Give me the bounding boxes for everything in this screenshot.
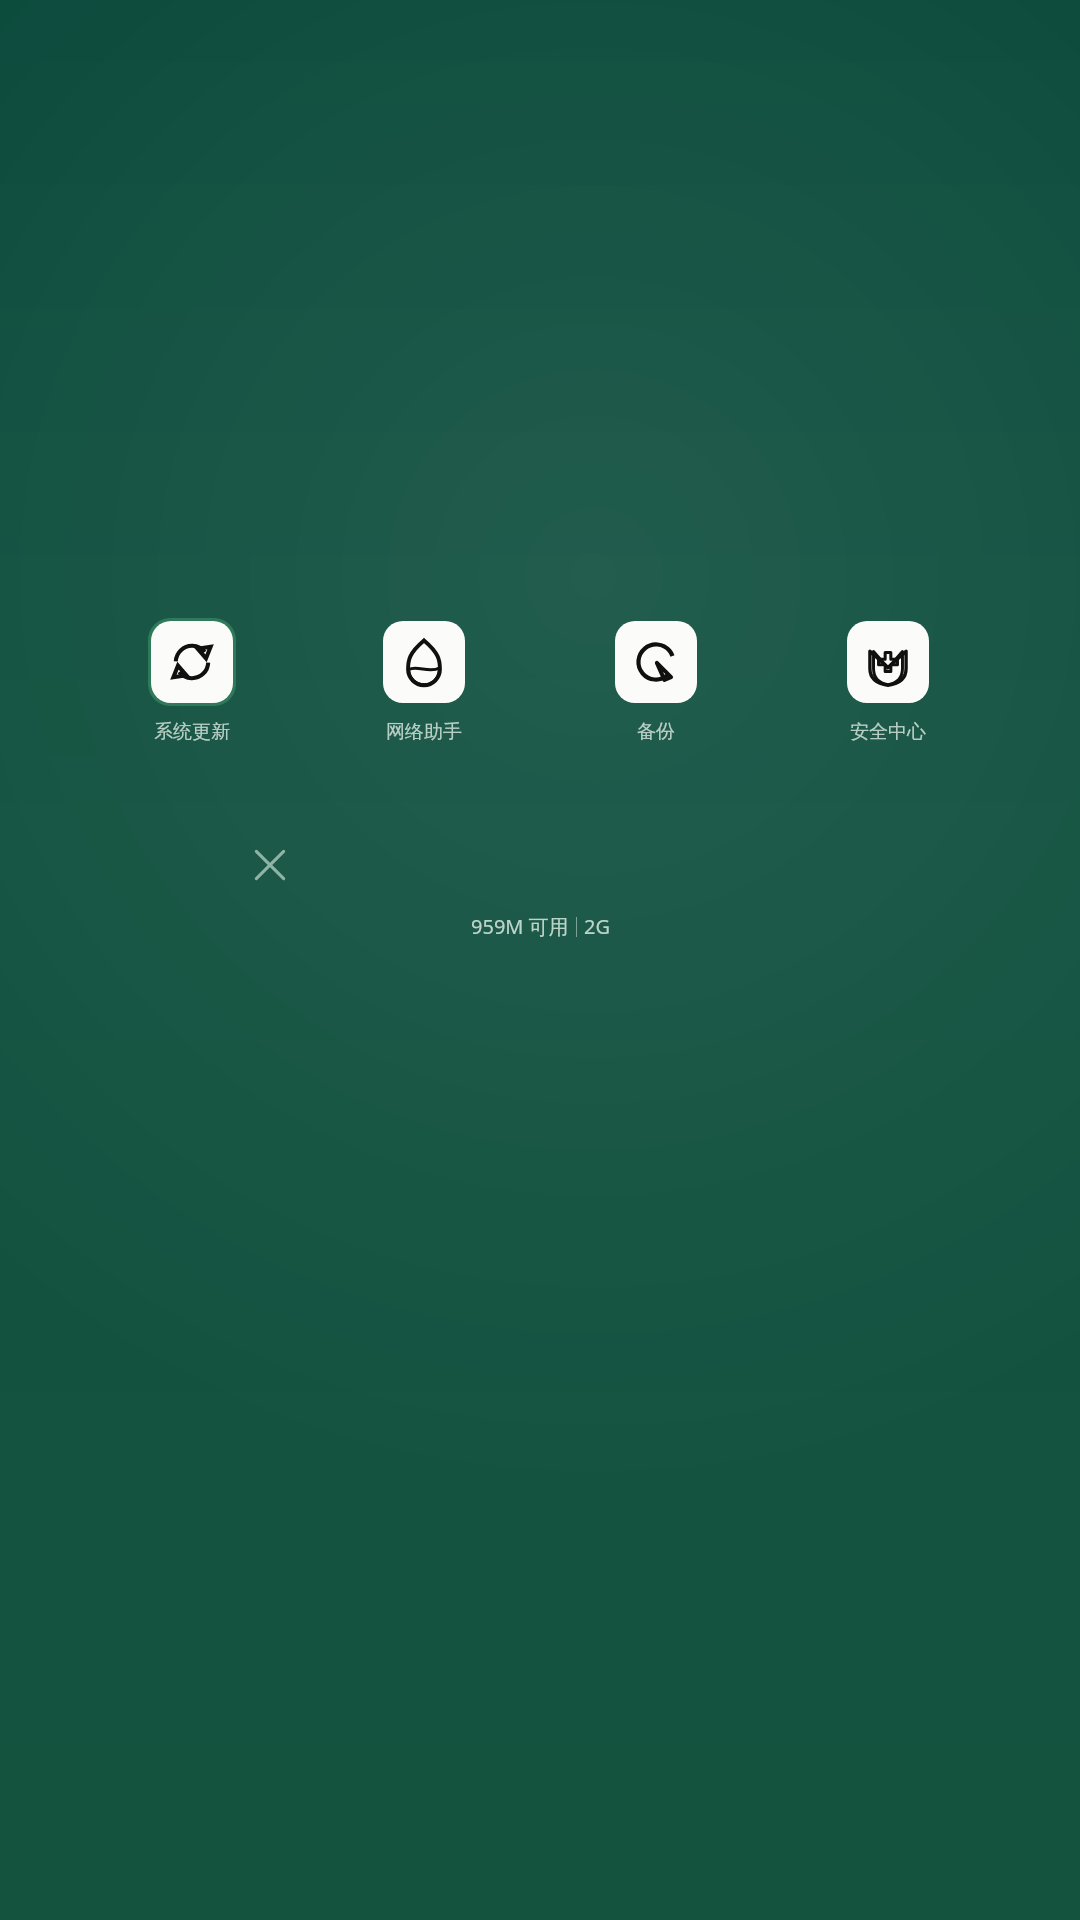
- staticText: 网络助手: [386, 720, 462, 744]
- button[interactable]: 系统更新: [136, 618, 248, 744]
- staticText: 安全中心: [850, 720, 926, 744]
- button[interactable]: 安全中心: [832, 618, 944, 744]
- button[interactable]: 备份: [600, 618, 712, 744]
- button[interactable]: 网络助手: [368, 618, 480, 744]
- button[interactable]: Close: [240, 835, 300, 895]
- staticText: 959M 可用: [471, 913, 569, 940]
- staticText: 备份: [637, 720, 675, 744]
- staticText: 2G: [584, 913, 610, 940]
- staticText: 系统更新: [154, 720, 230, 744]
